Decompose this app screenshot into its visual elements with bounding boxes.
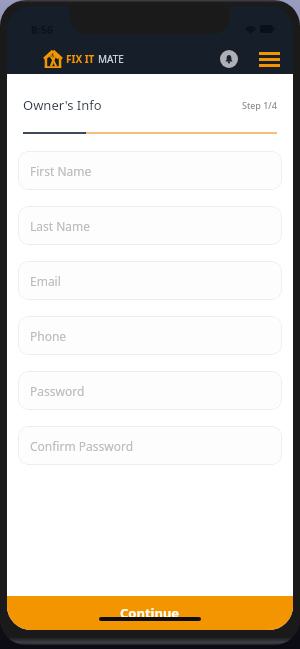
button[interactable]: Confirm Password [18, 426, 282, 465]
staticText: Last Name [30, 218, 91, 234]
staticText: FIX IT [66, 52, 95, 66]
button[interactable]: Password [18, 371, 282, 410]
staticText: Email [30, 273, 61, 289]
staticText: Confirm Password [30, 438, 134, 454]
staticText: Phone [30, 328, 67, 344]
button[interactable]: Last Name [18, 206, 282, 245]
button[interactable]: Email [18, 261, 282, 300]
button[interactable]: Notifications [220, 50, 238, 68]
button[interactable]: Menu [259, 52, 280, 67]
staticText: First Name [30, 163, 92, 179]
staticText: Password [30, 383, 85, 399]
staticText: MATE [98, 52, 124, 66]
staticText: Step 1/4 [242, 99, 277, 111]
button[interactable]: First Name [18, 151, 282, 190]
staticText: Owner's Info [23, 96, 102, 114]
staticText: Continue [120, 604, 180, 622]
button[interactable]: Phone [18, 316, 282, 355]
button[interactable]: Continue [7, 596, 293, 630]
staticText: 8:56 [31, 22, 53, 37]
